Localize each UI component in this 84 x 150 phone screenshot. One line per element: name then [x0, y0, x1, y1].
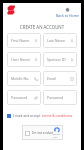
staticText: reCAPTCHA: [53, 133, 61, 139]
button[interactable]: Last Name: [43, 33, 77, 48]
staticText: First Name: [11, 38, 30, 43]
staticText: User Name: [11, 57, 30, 62]
button[interactable]: I'm not a robot: [22, 125, 63, 140]
button[interactable]: First Name: [7, 33, 41, 48]
staticText: Email: [47, 76, 57, 81]
staticText: I'm not a robot: [32, 131, 53, 135]
button[interactable]: Sponsor ID: [43, 52, 77, 67]
button[interactable]: I read and accept: [7, 113, 73, 118]
staticText: Sponsor ID: [47, 57, 66, 62]
button[interactable]: Password (Confirm): [43, 90, 77, 105]
button[interactable]: Logo: [7, 5, 15, 15]
staticText: I read and accept: [13, 113, 42, 118]
button[interactable]: Password: [7, 90, 41, 105]
button[interactable]: Email: [43, 71, 77, 86]
button[interactable]: Mobile No.: [7, 71, 41, 86]
staticText: terms & conditions: [42, 113, 73, 118]
staticText: Last Name: [47, 38, 65, 43]
staticText: Password (Confirm): [47, 95, 74, 100]
button[interactable]: User Name: [7, 52, 41, 67]
staticText: Back to Home: [56, 13, 79, 18]
button[interactable]: Back to Home: [56, 7, 79, 18]
staticText: Password: [11, 95, 28, 100]
staticText: Mobile No.: [11, 76, 30, 81]
staticText: CREATE AN ACCOUNT: [3, 24, 81, 30]
